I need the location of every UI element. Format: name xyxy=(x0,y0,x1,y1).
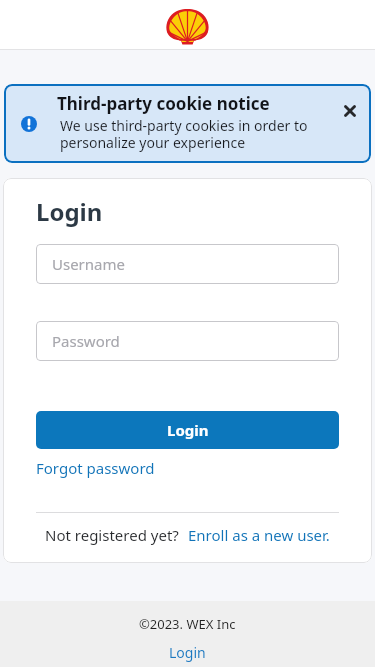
button[interactable]: Username xyxy=(36,244,339,284)
staticText: Not registered yet? xyxy=(45,525,179,545)
staticText: Enroll as a new user. xyxy=(188,525,330,545)
staticText: Password xyxy=(52,331,120,351)
button[interactable]: Forgot password xyxy=(36,458,155,478)
staticText: Username xyxy=(52,254,125,274)
button[interactable]: Password xyxy=(36,321,339,361)
staticText: Third-party cookie notice xyxy=(57,92,270,115)
button[interactable]: Enroll as a new user. xyxy=(188,525,330,545)
staticText: Login xyxy=(167,420,209,440)
staticText: Forgot password xyxy=(36,458,155,478)
button[interactable]: Login xyxy=(169,643,206,662)
staticText: Login xyxy=(169,643,206,662)
staticText: We use third-party cookies in order to p… xyxy=(60,116,308,152)
staticText: Login xyxy=(36,195,103,228)
button[interactable] xyxy=(336,97,364,125)
button[interactable]: Login xyxy=(36,411,339,449)
staticText: ©2023. WEX Inc xyxy=(139,615,236,633)
